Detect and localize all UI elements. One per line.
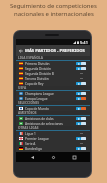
button[interactable]: Toggle notifications [76, 67, 86, 70]
button[interactable]: Premier League [16, 136, 90, 141]
staticText: Ligue 1 [25, 132, 76, 136]
button[interactable]: Toggle notifications [76, 122, 86, 125]
button[interactable]: Amistosos de selecciones [16, 121, 90, 126]
staticText: Copa de Mundo [25, 107, 76, 111]
staticText: MÁS PARTIDOS - PREFERIDOS [25, 48, 85, 54]
button[interactable]: Amistosos de clubs [16, 116, 90, 121]
staticText: Tercera División [25, 77, 76, 81]
button[interactable]: Toggle notifications [76, 62, 86, 65]
button[interactable]: Champions League [16, 91, 90, 96]
button[interactable]: Toggle notifications [76, 77, 86, 80]
staticText: Seguimiento de competiciones [10, 2, 97, 10]
button[interactable]: Ligue 1 [16, 131, 90, 136]
staticText: Premier League [25, 137, 76, 141]
staticText: UEFA [18, 86, 27, 90]
staticText: Amistosos de selecciones [25, 122, 76, 126]
button[interactable]: Segunda División B [16, 71, 90, 76]
button[interactable]: Recents [69, 152, 79, 162]
button[interactable]: Copa de Rey [16, 81, 90, 86]
button[interactable]: Primera División [16, 61, 90, 66]
staticText: Serie A [25, 142, 76, 146]
staticText: Bundesliga [25, 147, 76, 151]
staticText: Europa League [25, 97, 76, 101]
button[interactable]: Toggle notifications [76, 132, 86, 135]
staticText: 5:41 [80, 40, 88, 45]
staticText: nacionales e internacionales [14, 10, 94, 18]
button[interactable]: Toggle notifications [76, 137, 86, 140]
staticText: OTRAS LIGAS [18, 126, 39, 130]
staticText: Segunda División B [25, 72, 76, 76]
staticText: Segunda División [25, 67, 76, 71]
button[interactable]: Bundesliga [16, 146, 90, 151]
button[interactable]: Toggle notifications [76, 82, 86, 85]
button[interactable]: Toggle notifications [76, 147, 86, 150]
button[interactable]: Back [27, 152, 37, 162]
staticText: Primera División [25, 62, 76, 66]
staticText: Champions League [25, 92, 76, 96]
button[interactable]: Serie A [16, 141, 90, 146]
staticText: Copa de Rey [25, 82, 76, 86]
button[interactable]: Tercera División [16, 76, 90, 81]
button[interactable]: Toggle notifications [76, 107, 86, 110]
button[interactable]: Toggle notifications [76, 72, 86, 75]
button[interactable]: Toggle notifications [76, 97, 86, 100]
button[interactable]: Back [16, 45, 25, 56]
staticText: Amistosos de clubs [25, 117, 76, 121]
button[interactable]: Toggle notifications [76, 142, 86, 145]
staticText: SELECCIONES [18, 101, 40, 105]
button[interactable]: Copa de Mundo [16, 106, 90, 111]
staticText: LIGA ESPAÑOLA [18, 56, 44, 60]
staticText: AMISTOSOS [18, 111, 37, 115]
button[interactable]: Europa League [16, 96, 90, 101]
button[interactable]: Segunda División [16, 66, 90, 71]
button[interactable]: Toggle notifications [76, 117, 86, 120]
button[interactable]: Toggle notifications [76, 92, 86, 95]
button[interactable]: Home [48, 152, 58, 162]
